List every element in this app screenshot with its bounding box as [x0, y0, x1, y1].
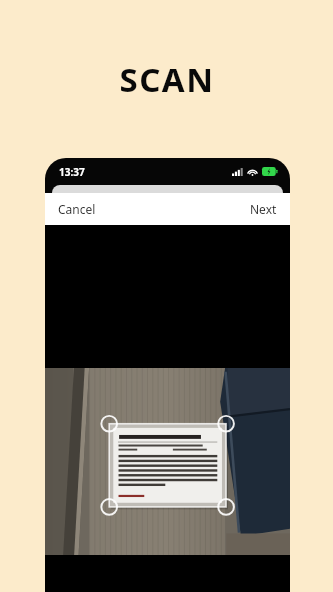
button[interactable]: Next: [237, 194, 290, 224]
staticText: 13:37: [59, 165, 85, 179]
staticText: Cancel: [58, 201, 96, 217]
staticText: Next: [250, 201, 277, 217]
button[interactable]: Scanned document preview with crop handl…: [45, 368, 290, 555]
staticText: SCAN: [119, 57, 215, 102]
button[interactable]: Cancel: [45, 194, 109, 224]
